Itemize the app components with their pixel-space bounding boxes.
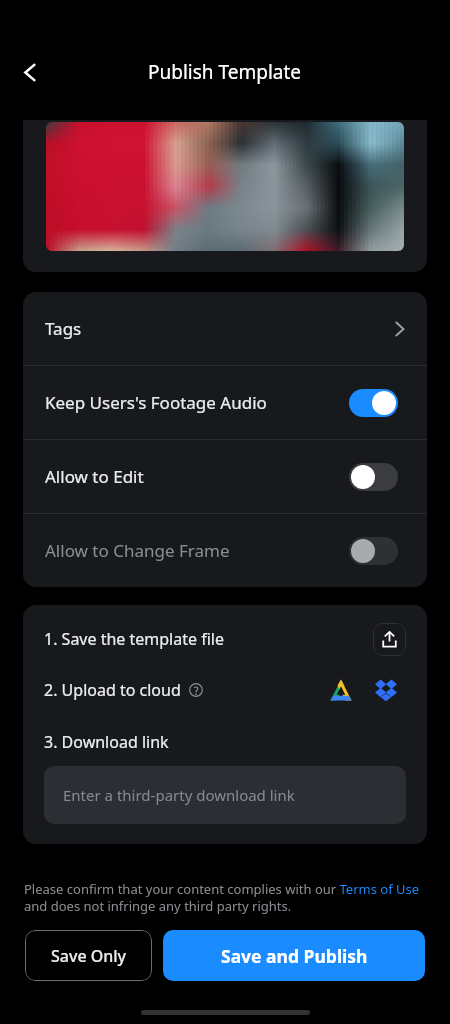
staticText: 3. Download link [44, 731, 169, 753]
button[interactable]: Dropbox [375, 679, 397, 701]
button[interactable]: Back [6, 48, 54, 96]
button[interactable]: Tags [23, 292, 427, 365]
staticText: 2. Upload to cloud [44, 679, 181, 701]
button[interactable]: Save template file [373, 623, 406, 656]
staticText: Allow to Change Frame [45, 539, 230, 562]
staticText: Enter a third-party download link [63, 785, 295, 805]
staticText: Save and Publish [221, 944, 368, 968]
button[interactable]: Allow to Edit [23, 440, 427, 513]
button[interactable]: Please confirm that your content complie… [24, 880, 420, 915]
button[interactable]: Allow to Change Frame [23, 514, 427, 587]
button[interactable]: Save Only [25, 930, 152, 981]
button[interactable]: Allow to Change Frame [349, 537, 398, 565]
staticText: Allow to Edit [45, 465, 144, 488]
button[interactable]: Keep Users's Footage Audio [23, 366, 427, 439]
staticText: 1. Save the template file [44, 628, 224, 650]
staticText: Publish Template [148, 59, 302, 85]
button[interactable]: Keep Users's Footage Audio [349, 389, 398, 417]
staticText: Keep Users's Footage Audio [45, 391, 267, 414]
button[interactable]: Google Drive [330, 679, 352, 701]
button[interactable]: Allow to Edit [349, 463, 398, 491]
staticText: Tags [45, 317, 82, 340]
button[interactable]: Help [188, 682, 204, 698]
button[interactable]: Save and Publish [163, 930, 425, 981]
button[interactable]: Enter a third-party download link [44, 766, 406, 824]
button[interactable]: Tags [393, 320, 405, 338]
staticText: Save Only [51, 945, 127, 967]
